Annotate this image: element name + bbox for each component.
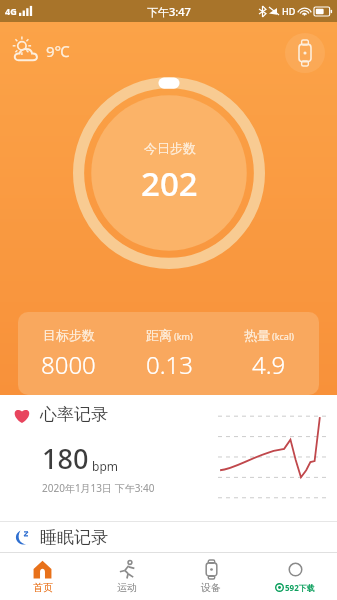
staticText: 设备 bbox=[201, 581, 221, 594]
button[interactable]: 首页 bbox=[0, 553, 85, 600]
staticText: 4G bbox=[5, 5, 17, 17]
staticText: 运动 bbox=[117, 581, 137, 594]
button[interactable]: 设备 bbox=[169, 553, 253, 600]
staticText: 9℃ bbox=[46, 41, 70, 61]
button[interactable]: 9℃ bbox=[8, 34, 74, 68]
button[interactable]: 目标步数 bbox=[18, 312, 319, 395]
staticText: 睡眠记录 bbox=[40, 527, 108, 548]
staticText: 0.13 bbox=[146, 348, 193, 381]
staticText: 592下载 bbox=[285, 582, 315, 593]
staticText: HD bbox=[282, 5, 296, 17]
staticText: 首页 bbox=[33, 581, 53, 594]
staticText: 下午3:47 bbox=[147, 4, 191, 19]
button[interactable]: 心率记录 bbox=[0, 395, 337, 521]
staticText: bpm bbox=[92, 458, 118, 474]
button[interactable]: 更多 bbox=[253, 553, 337, 600]
staticText: 今日步数 bbox=[144, 140, 196, 156]
staticText: 目标步数 bbox=[43, 327, 95, 343]
staticText: 4.9 bbox=[252, 348, 286, 381]
button[interactable]: 今日步数 bbox=[73, 77, 265, 269]
staticText: 180 bbox=[42, 440, 89, 477]
staticText: 202 bbox=[141, 161, 198, 206]
staticText: (kcal) bbox=[272, 330, 294, 342]
staticText: 热量 bbox=[244, 327, 270, 343]
staticText: 距离 bbox=[146, 327, 172, 343]
staticText: (km) bbox=[174, 330, 193, 342]
staticText: 2020年1月13日 下午3:40 bbox=[42, 481, 155, 495]
staticText: 8000 bbox=[41, 348, 96, 381]
button[interactable]: 运动 bbox=[85, 553, 169, 600]
button[interactable]: 设备 bbox=[285, 33, 325, 73]
button[interactable]: 睡眠记录 bbox=[0, 522, 337, 552]
staticText: 心率记录 bbox=[40, 404, 108, 425]
